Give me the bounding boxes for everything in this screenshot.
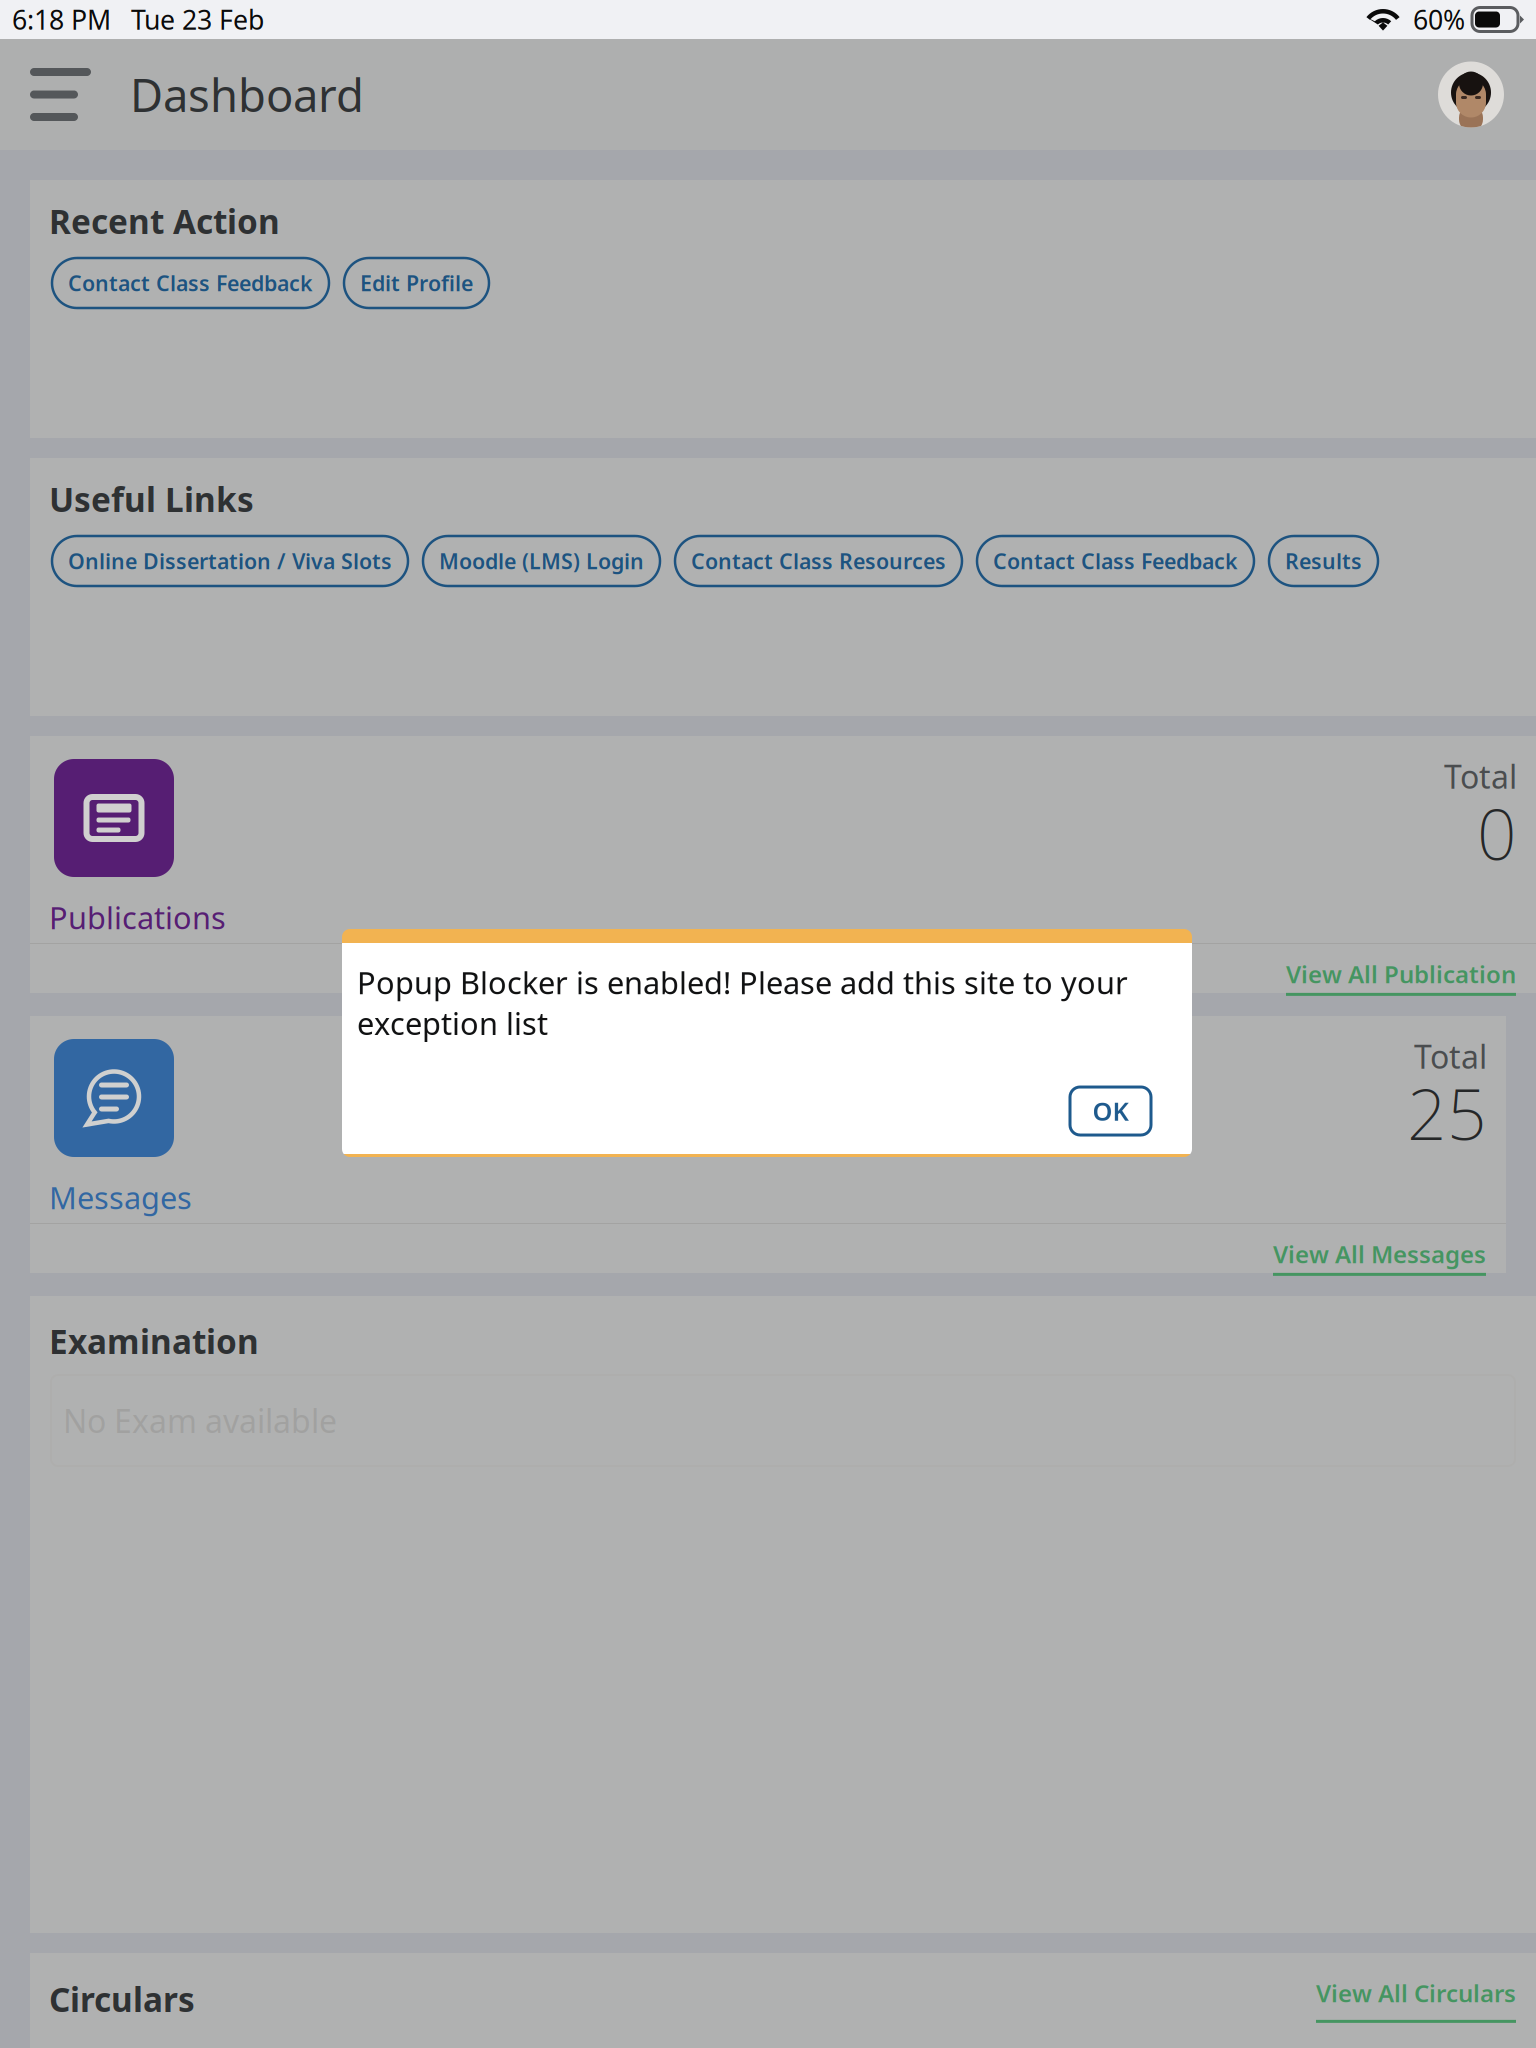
button[interactable]: Profile [1438,39,1536,150]
staticText: Useful Links [49,477,254,521]
button[interactable]: View All Circulars [1316,1977,1516,2023]
button[interactable]: Online Dissertation / Viva Slots [52,536,408,586]
button[interactable]: View All Publication [1286,958,1516,996]
staticText: Circulars [49,1977,195,2021]
staticText: Online Dissertation / Viva Slots [68,547,392,575]
staticText: Moodle (LMS) Login [439,547,644,575]
button[interactable]: Contact Class Feedback [52,258,329,308]
staticText: Recent Action [49,199,280,243]
staticText: Total [1414,1035,1487,1077]
button[interactable]: Results [1269,536,1378,586]
staticText: 0 [1477,787,1517,879]
button[interactable]: Moodle (LMS) Login [423,536,660,586]
staticText: View All Publication [1286,958,1516,990]
staticText: Contact Class Feedback [993,547,1238,575]
staticText: Total [1444,755,1517,797]
staticText: 25 [1407,1067,1487,1159]
staticText: No Exam available [63,1399,337,1442]
button[interactable]: Edit Profile [344,258,489,308]
button[interactable]: Contact Class Feedback [977,536,1254,586]
staticText: OK [1092,1094,1128,1128]
button[interactable]: Contact Class Resources [675,536,962,586]
staticText: Messages [49,1177,192,1218]
staticText: Examination [49,1319,259,1363]
staticText: Results [1285,547,1362,575]
staticText: 60% [1413,2,1465,37]
button[interactable]: Menu [0,39,130,150]
staticText: View All Messages [1273,1238,1486,1270]
staticText: Contact Class Resources [691,547,946,575]
staticText: Publications [49,897,226,938]
button[interactable]: OK [1070,1087,1151,1135]
button[interactable]: View All Messages [1273,1238,1486,1276]
staticText: Contact Class Feedback [68,269,313,297]
staticText: Dashboard [130,64,364,125]
staticText: 6:18 PM [12,2,111,37]
staticText: Popup Blocker is enabled! Please add thi… [357,962,1128,1043]
staticText: Tue 23 Feb [131,2,264,37]
staticText: View All Circulars [1316,1977,1516,2009]
staticText: Edit Profile [360,269,473,297]
